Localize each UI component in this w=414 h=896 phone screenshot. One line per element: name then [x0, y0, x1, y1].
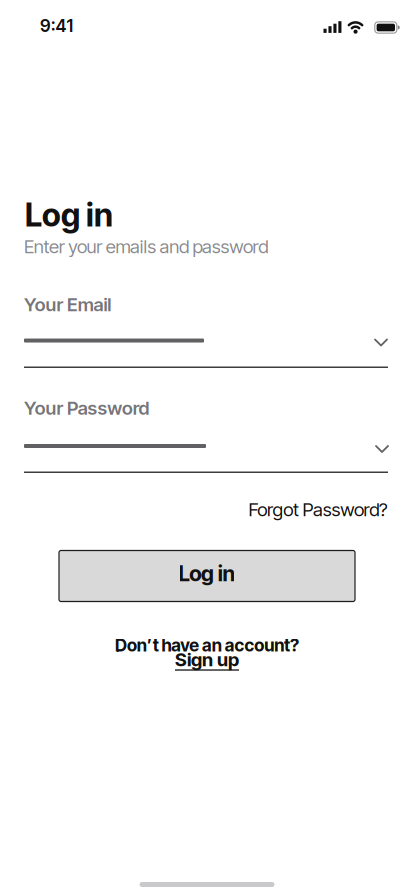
staticText: Your Email: [24, 293, 111, 315]
staticText: 9:41: [40, 15, 73, 36]
staticText: Your Password: [24, 397, 150, 419]
staticText: Log in: [178, 561, 235, 586]
staticText: Enter your emails and password: [24, 235, 268, 257]
staticText: Log in: [25, 196, 113, 234]
staticText: Sign up: [175, 648, 239, 670]
staticText: Don’t have an account?: [115, 635, 299, 655]
staticText: Forgot Password?: [248, 498, 388, 520]
